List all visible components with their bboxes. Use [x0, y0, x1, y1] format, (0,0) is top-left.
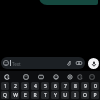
staticText: Y	[54, 92, 57, 99]
button[interactable]: Attach file	[66, 60, 72, 66]
staticText: O	[83, 92, 87, 99]
button[interactable]: 0	[91, 82, 99, 90]
button[interactable]: Translate	[77, 74, 83, 80]
button[interactable]: 3	[21, 82, 29, 90]
button[interactable]: Y	[51, 91, 59, 99]
button[interactable]: GIF	[38, 74, 44, 80]
staticText: W	[13, 92, 18, 99]
button[interactable]: T	[41, 91, 49, 99]
button[interactable]: I	[71, 91, 79, 99]
button[interactable]: More	[89, 74, 95, 80]
staticText: Text	[12, 61, 21, 67]
staticText: Q	[3, 92, 7, 99]
button[interactable]: U	[61, 91, 69, 99]
button[interactable]: O	[81, 91, 89, 99]
staticText: E	[24, 92, 27, 99]
staticText: 4	[34, 83, 37, 90]
button[interactable]: 1	[1, 82, 9, 90]
staticText: R	[33, 92, 37, 99]
button[interactable]: 7	[61, 82, 69, 90]
button[interactable]: Stickers	[23, 74, 29, 80]
staticText: 8	[74, 83, 77, 90]
staticText: 6	[54, 83, 57, 90]
button[interactable]: 2	[11, 82, 19, 90]
button[interactable]: 6	[51, 82, 59, 90]
button[interactable]: 9	[81, 82, 89, 90]
button[interactable]: R	[31, 91, 39, 99]
staticText: 5	[44, 83, 47, 90]
staticText: 2	[14, 83, 17, 90]
button[interactable]: Voice message	[88, 58, 99, 69]
button[interactable]: Camera	[76, 60, 82, 66]
button[interactable]: W	[11, 91, 19, 99]
button[interactable]: Emoji	[1, 57, 85, 69]
button[interactable]: P	[91, 91, 99, 99]
button[interactable]: Google search	[4, 74, 10, 80]
staticText: 9	[84, 83, 87, 90]
button[interactable]: Settings	[67, 74, 73, 80]
staticText: U	[63, 92, 67, 99]
button[interactable]: 4	[31, 82, 39, 90]
button[interactable]: Emoji	[53, 74, 59, 80]
button[interactable]: Emoji	[3, 60, 9, 66]
staticText: 1	[4, 83, 7, 90]
staticText: T	[44, 92, 47, 99]
button[interactable]: Q	[1, 91, 9, 99]
button[interactable]: 5	[41, 82, 49, 90]
staticText: 3	[24, 83, 27, 90]
staticText: 7	[64, 83, 67, 90]
staticText: P	[93, 92, 97, 99]
staticText: 0	[94, 83, 97, 90]
button[interactable]: E	[21, 91, 29, 99]
button[interactable]: 8	[71, 82, 79, 90]
staticText: I	[74, 92, 76, 99]
